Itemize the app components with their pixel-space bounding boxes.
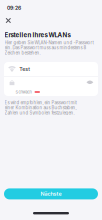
- button[interactable]: Nächste: [4, 188, 98, 199]
- staticText: Hier geben Sie WLAN-Namen und -Passwort …: [4, 40, 93, 55]
- staticText: 09:26: [7, 5, 21, 11]
- staticText: Nächste: [40, 191, 61, 197]
- staticText: Schwach: [15, 90, 31, 94]
- button[interactable]: Show password: [85, 79, 94, 86]
- staticText: Erstellen Ihres WLANs: [4, 31, 70, 39]
- staticText: Es wird empfohlen, ein Passwort mit eine…: [4, 100, 76, 115]
- staticText: Test: [19, 66, 30, 72]
- button[interactable]: Close: [2, 14, 14, 26]
